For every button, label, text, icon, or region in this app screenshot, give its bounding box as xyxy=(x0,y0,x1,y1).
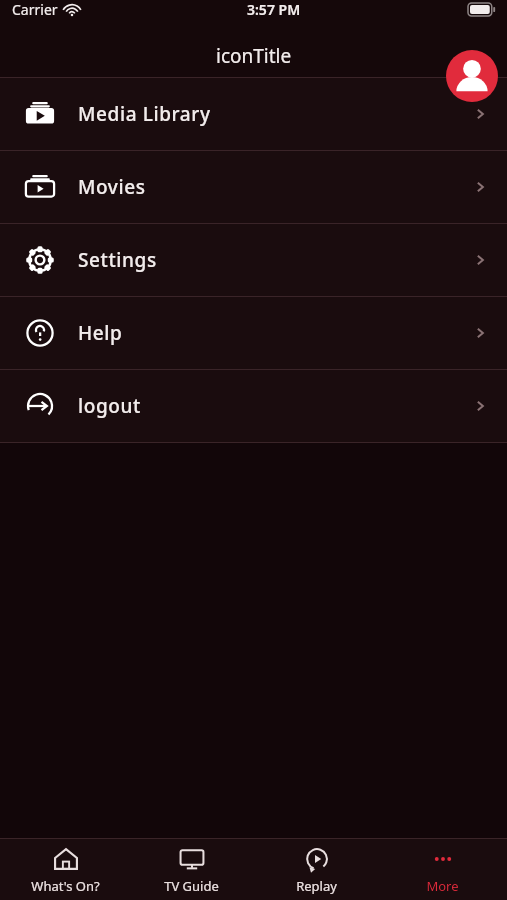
staticText: iconTitle xyxy=(216,43,292,69)
staticText: logout xyxy=(78,393,141,419)
staticText: Settings xyxy=(78,247,157,273)
button[interactable]: Help xyxy=(0,297,507,369)
staticText: Carrier xyxy=(12,0,58,19)
staticText: Movies xyxy=(78,174,146,200)
button[interactable]: Media Library xyxy=(0,78,507,150)
button[interactable]: More xyxy=(382,839,502,900)
button[interactable]: logout xyxy=(0,370,507,442)
button[interactable]: What's On? xyxy=(5,839,125,900)
staticText: 3:57 PM xyxy=(247,0,301,19)
button[interactable]: Settings xyxy=(0,224,507,296)
staticText: What's On? xyxy=(31,877,100,895)
button[interactable]: Replay xyxy=(256,839,376,900)
staticText: Help xyxy=(78,320,123,346)
button[interactable]: Movies xyxy=(0,151,507,223)
staticText: Media Library xyxy=(78,101,211,127)
staticText: Replay xyxy=(296,877,337,895)
button[interactable]: Profile xyxy=(446,50,498,102)
staticText: More xyxy=(426,877,459,895)
button[interactable]: TV Guide xyxy=(131,839,251,900)
staticText: TV Guide xyxy=(164,877,219,895)
